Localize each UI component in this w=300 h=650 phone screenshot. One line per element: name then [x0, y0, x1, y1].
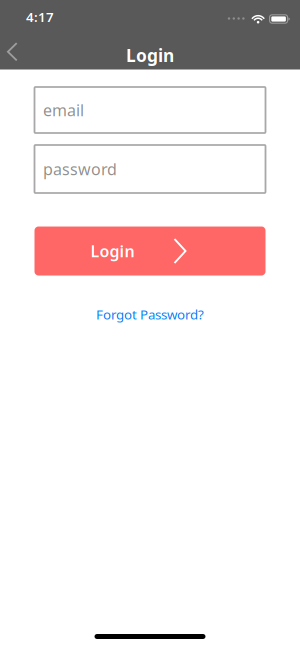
staticText: password	[43, 158, 117, 180]
button[interactable]: Login	[34, 226, 265, 275]
button[interactable]: email	[34, 87, 265, 133]
staticText: Login	[126, 44, 174, 67]
button[interactable]: Back	[0, 34, 27, 69]
staticText: 4:17	[26, 8, 54, 26]
button[interactable]: Forgot Password?	[96, 305, 204, 323]
staticText: email	[43, 99, 84, 121]
staticText: Forgot Password?	[96, 305, 204, 323]
staticText: Login	[90, 240, 134, 262]
button[interactable]: password	[34, 145, 265, 193]
